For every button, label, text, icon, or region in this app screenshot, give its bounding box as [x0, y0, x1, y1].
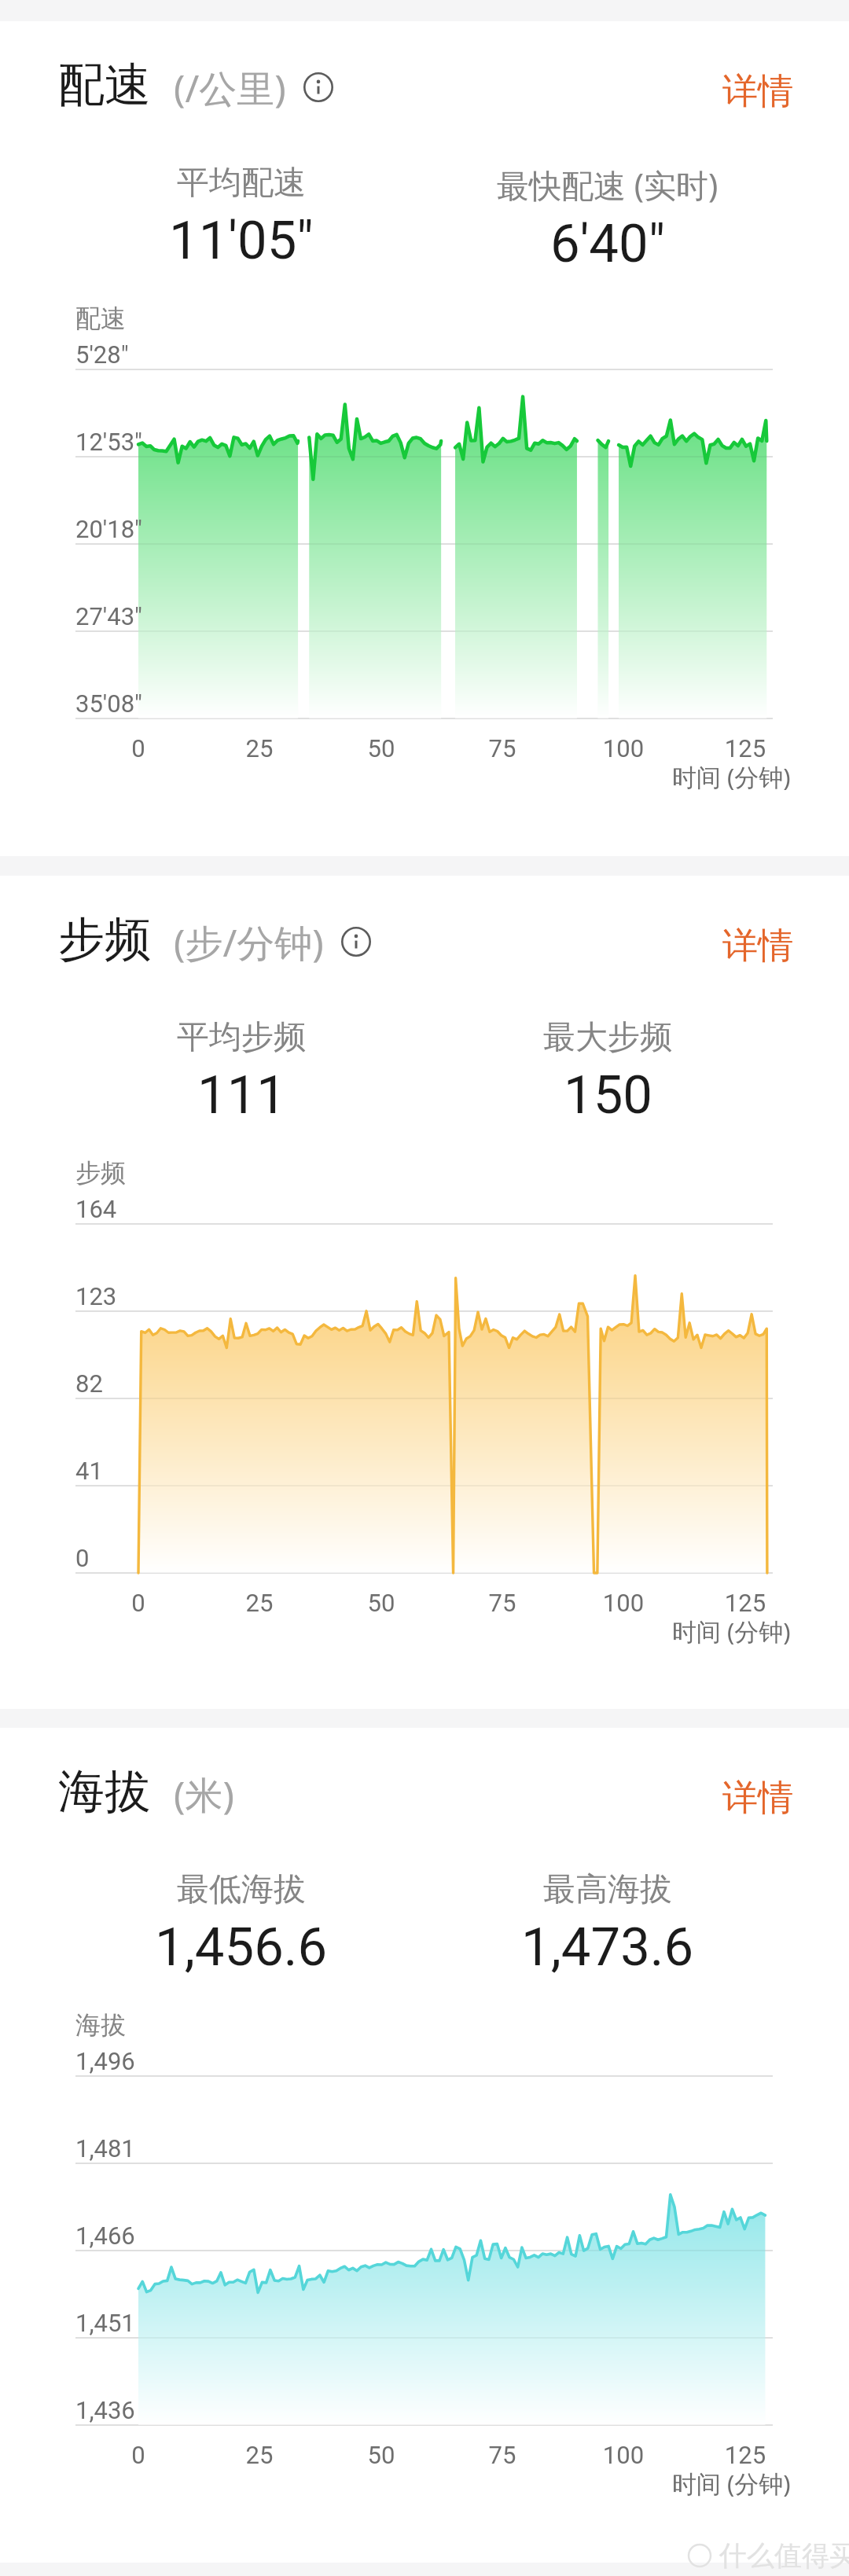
staticText: 1,456.6	[155, 1916, 328, 1979]
staticText: 25	[212, 2441, 307, 2469]
staticText: 步频	[58, 910, 151, 968]
staticText: 1,466	[75, 2221, 135, 2250]
staticText: 时间 (分钟)	[672, 760, 791, 793]
staticText: 1,473.6	[521, 1916, 694, 1979]
staticText: 时间 (分钟)	[672, 2467, 791, 2500]
other: Info	[341, 927, 371, 957]
staticText: 0	[91, 2441, 186, 2469]
staticText: 25	[212, 1589, 307, 1617]
staticText: 详情	[722, 924, 793, 968]
staticText: 123	[75, 1282, 117, 1310]
staticText: (/公里)	[174, 62, 286, 114]
staticText: (米)	[174, 1769, 234, 1821]
button[interactable]: 详情	[722, 1772, 793, 1817]
staticText: 125	[698, 2441, 792, 2469]
button[interactable]: 配速	[0, 21, 849, 153]
staticText: 平均配速	[177, 163, 306, 204]
button[interactable]: 详情	[722, 920, 793, 965]
button[interactable]: 海拔	[0, 1728, 849, 1860]
staticText: 82	[75, 1369, 103, 1398]
staticText: (步/分钟)	[174, 917, 324, 968]
button[interactable]: 详情	[722, 65, 793, 110]
staticText: 111	[197, 1064, 286, 1126]
staticText: 详情	[722, 1776, 793, 1821]
staticText: 75	[455, 1589, 549, 1617]
staticText: 1,436	[75, 2396, 135, 2424]
staticText: 75	[455, 734, 549, 763]
staticText: 最快配速 (实时)	[497, 163, 719, 207]
staticText: 125	[698, 1589, 792, 1617]
staticText: 什么值得买	[719, 2538, 849, 2573]
staticText: 27'43"	[75, 602, 143, 630]
staticText: 50	[334, 2441, 428, 2469]
staticText: 164	[75, 1195, 117, 1223]
staticText: 步频	[75, 1157, 126, 1189]
staticText: 1,451	[75, 2309, 135, 2337]
staticText: 1,481	[75, 2134, 135, 2163]
staticText: 6'40"	[550, 213, 666, 275]
staticText: 详情	[722, 69, 793, 114]
staticText: 100	[576, 734, 671, 763]
staticText: 最高海拔	[543, 1869, 672, 1910]
staticText: 0	[75, 1544, 90, 1572]
other: Info	[303, 72, 333, 102]
staticText: 11'05"	[169, 210, 314, 272]
staticText: 150	[564, 1064, 652, 1126]
staticText: 12'53"	[75, 428, 143, 456]
staticText: 125	[698, 734, 792, 763]
staticText: 5'28"	[75, 340, 129, 369]
staticText: 0	[91, 1589, 186, 1617]
staticText: 0	[91, 734, 186, 763]
staticText: 50	[334, 1589, 428, 1617]
staticText: 配速	[75, 303, 126, 334]
staticText: 1,496	[75, 2047, 135, 2075]
staticText: 100	[576, 2441, 671, 2469]
staticText: 最低海拔	[177, 1869, 306, 1910]
staticText: 平均步频	[177, 1017, 306, 1058]
staticText: 25	[212, 734, 307, 763]
staticText: 最大步频	[543, 1017, 672, 1058]
button[interactable]: 步频	[0, 876, 849, 1008]
staticText: 100	[576, 1589, 671, 1617]
staticText: 配速	[58, 56, 151, 114]
staticText: 海拔	[75, 2009, 126, 2041]
staticText: 海拔	[58, 1762, 151, 1821]
staticText: 时间 (分钟)	[672, 1615, 791, 1648]
staticText: 20'18"	[75, 515, 143, 543]
staticText: 41	[75, 1457, 103, 1485]
staticText: 75	[455, 2441, 549, 2469]
staticText: 50	[334, 734, 428, 763]
staticText: 35'08"	[75, 689, 143, 718]
